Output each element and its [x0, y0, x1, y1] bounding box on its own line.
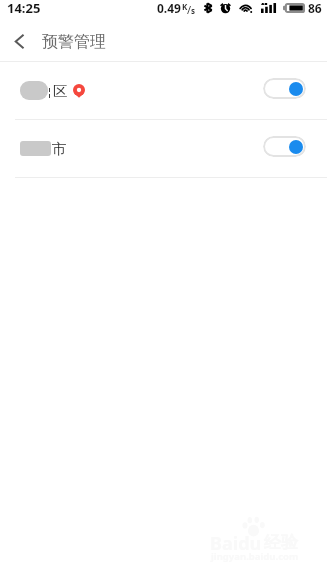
staticText: 86 [308, 0, 322, 16]
staticText: 市 [52, 140, 67, 158]
staticText: 0.49 [157, 0, 181, 16]
staticText: s [191, 5, 196, 16]
staticText: 14:25 [7, 0, 41, 17]
button[interactable]: Toggle alert [263, 136, 306, 157]
staticText: 区 [53, 82, 68, 100]
button[interactable]: 区 [0, 62, 327, 119]
button[interactable]: 市 [0, 120, 327, 177]
staticText: K [182, 1, 188, 12]
button[interactable]: Toggle alert [263, 78, 306, 99]
staticText: / [187, 2, 192, 16]
button[interactable]: Back [0, 22, 38, 61]
staticText: 预警管理 [42, 32, 106, 52]
